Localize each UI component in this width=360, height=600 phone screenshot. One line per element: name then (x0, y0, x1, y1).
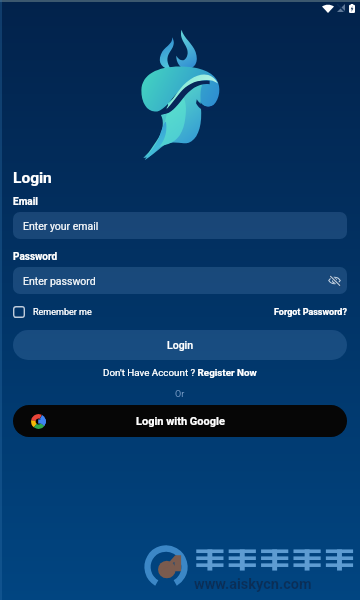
button[interactable]: Login with Google (13, 405, 347, 437)
staticText: Enter password (23, 275, 96, 287)
button[interactable]: Forgot Password? (274, 306, 347, 319)
button[interactable]: Login (13, 330, 347, 360)
button[interactable]: Don't Have Account ? Register Now (13, 367, 347, 378)
staticText: Login (167, 339, 194, 351)
button[interactable]: Show password (328, 274, 341, 287)
staticText: Don't Have Account ? Register Now (103, 367, 257, 378)
staticText: Login (13, 169, 52, 187)
button[interactable]: Enter your email (13, 212, 347, 239)
staticText: www.aiskycn.com (194, 576, 312, 593)
button[interactable]: Enter password (13, 267, 347, 294)
staticText: Or (175, 389, 185, 400)
button[interactable]: Remember me (13, 305, 92, 319)
staticText: Email (13, 196, 38, 208)
staticText: Enter your email (23, 220, 99, 232)
staticText: Remember me (33, 307, 92, 318)
staticText: Password (13, 251, 58, 263)
staticText: Forgot Password? (274, 307, 347, 318)
staticText: Login with Google (136, 415, 225, 428)
